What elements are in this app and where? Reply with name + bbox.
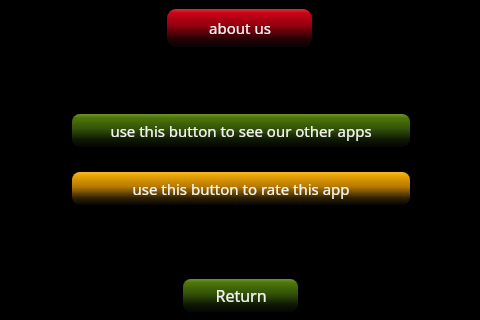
button[interactable]: about us (167, 9, 312, 47)
button[interactable]: use this button to rate this app (72, 172, 410, 205)
staticText: about us (209, 18, 271, 38)
staticText: use this button to see our other apps (110, 121, 372, 141)
button[interactable]: use this button to see our other apps (72, 114, 410, 147)
staticText: use this button to rate this app (132, 179, 350, 199)
button[interactable]: Return (183, 279, 298, 312)
staticText: Return (215, 285, 267, 307)
